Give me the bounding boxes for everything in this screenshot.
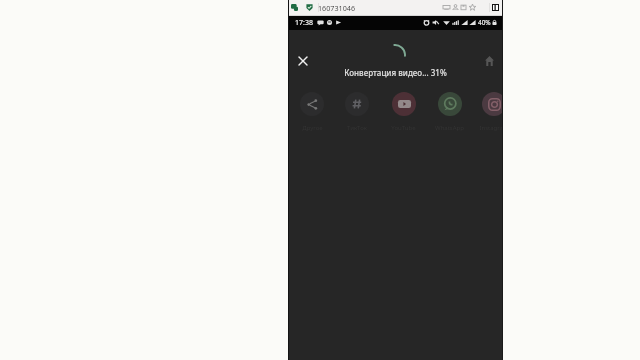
button[interactable]: Secure tab [306,0,313,15]
button[interactable]: YouTube [381,92,425,132]
staticText: 160731046 [318,3,356,13]
button[interactable]: ТикТок [335,92,379,132]
button[interactable]: Instagram [472,92,503,132]
button[interactable]: Profile [452,0,459,15]
staticText: Instagram [479,124,503,132]
button[interactable]: Sidebar [492,4,499,11]
button[interactable]: Cast [443,0,450,15]
button[interactable]: Home [477,49,501,73]
button[interactable]: Save [460,0,467,15]
staticText: Конвертация видео... 31% [344,67,447,78]
staticText: 40% [478,18,491,27]
button[interactable]: WhatsApp [427,92,471,132]
button[interactable]: Bookmark [469,0,476,15]
button[interactable]: Tab [291,0,298,15]
staticText: 17:38 [295,18,313,28]
button[interactable]: Close [291,49,315,73]
button[interactable]: Другое [290,92,334,132]
